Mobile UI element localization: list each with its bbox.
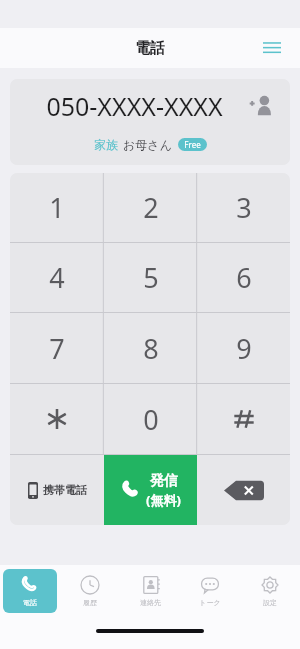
button[interactable]: Add contact <box>244 89 278 123</box>
staticText: 連絡先 <box>140 598 161 607</box>
staticText: 設定 <box>263 598 277 607</box>
staticText: お母さん <box>123 137 172 152</box>
button[interactable]: 履歴 <box>60 569 120 613</box>
button[interactable]: 電話 <box>0 569 60 613</box>
staticText: 0 <box>143 401 159 438</box>
button[interactable]: 9 <box>197 313 290 383</box>
button[interactable]: 6 <box>197 243 290 312</box>
staticText: 8 <box>143 330 159 367</box>
staticText: トーク <box>199 598 221 607</box>
button[interactable]: 7 <box>10 313 104 383</box>
button[interactable]: 0 <box>104 384 197 454</box>
staticText: 電話 <box>135 39 165 58</box>
button[interactable] <box>197 384 290 454</box>
staticText: 050-XXXX-XXXX <box>46 89 223 123</box>
staticText: Free <box>184 139 201 150</box>
button[interactable]: 4 <box>10 243 104 312</box>
button[interactable]: 8 <box>104 313 197 383</box>
staticText: 5 <box>143 259 159 296</box>
button[interactable] <box>10 384 104 454</box>
staticText: 6 <box>236 259 252 296</box>
button[interactable]: 1 <box>10 173 104 242</box>
button[interactable]: 携帯電話 <box>10 455 104 525</box>
staticText: 2 <box>143 189 159 226</box>
button[interactable]: トーク <box>180 569 240 613</box>
staticText: 3 <box>236 189 252 226</box>
button[interactable]: 2 <box>104 173 197 242</box>
staticText: 履歴 <box>83 598 97 607</box>
staticText: 7 <box>49 330 65 367</box>
staticText: (無料) <box>146 491 181 509</box>
staticText: 9 <box>236 330 252 367</box>
button[interactable]: 発信 <box>104 455 197 525</box>
button[interactable]: 3 <box>197 173 290 242</box>
button[interactable]: 連絡先 <box>120 569 180 613</box>
button[interactable]: 5 <box>104 243 197 312</box>
button[interactable]: Menu <box>258 34 286 62</box>
button[interactable]: Backspace <box>197 455 290 525</box>
staticText: 4 <box>49 259 65 296</box>
staticText: 電話 <box>23 598 37 607</box>
staticText: 家族 <box>94 137 118 152</box>
staticText: 発信 <box>150 472 178 490</box>
staticText: 携帯電話 <box>43 483 87 497</box>
button[interactable]: 設定 <box>240 569 300 613</box>
staticText: 1 <box>49 189 65 226</box>
